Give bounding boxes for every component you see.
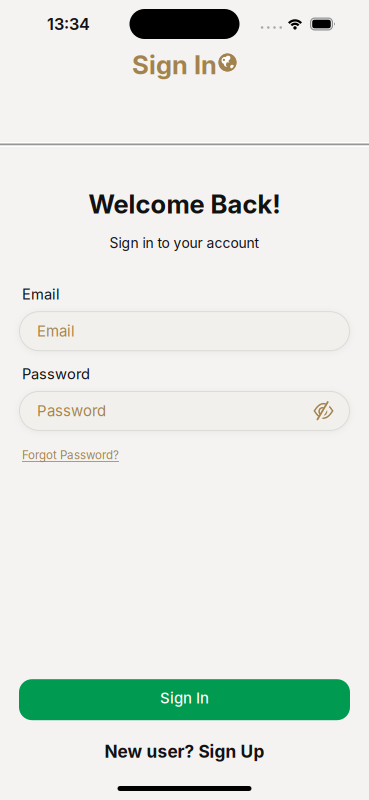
staticText: Sign In (132, 49, 217, 80)
staticText: New user? Sign Up (104, 741, 264, 762)
staticText: Password (22, 365, 90, 383)
button[interactable]: Email (0, 311, 369, 351)
staticText: Sign in to your account (109, 235, 259, 251)
staticText: Email (37, 322, 75, 340)
staticText: Welcome Back! (88, 188, 280, 220)
staticText: Email (22, 285, 60, 303)
button[interactable]: Forgot Password? (22, 448, 119, 462)
staticText: Forgot Password? (22, 448, 119, 462)
button[interactable]: Sign In (0, 679, 369, 720)
button[interactable]: Password (0, 391, 369, 431)
staticText: 13:34 (47, 14, 90, 34)
button[interactable]: New user? Sign Up (104, 741, 264, 762)
staticText: Sign In (160, 689, 209, 707)
button[interactable]: Show password (313, 402, 338, 419)
staticText: Password (37, 402, 106, 420)
